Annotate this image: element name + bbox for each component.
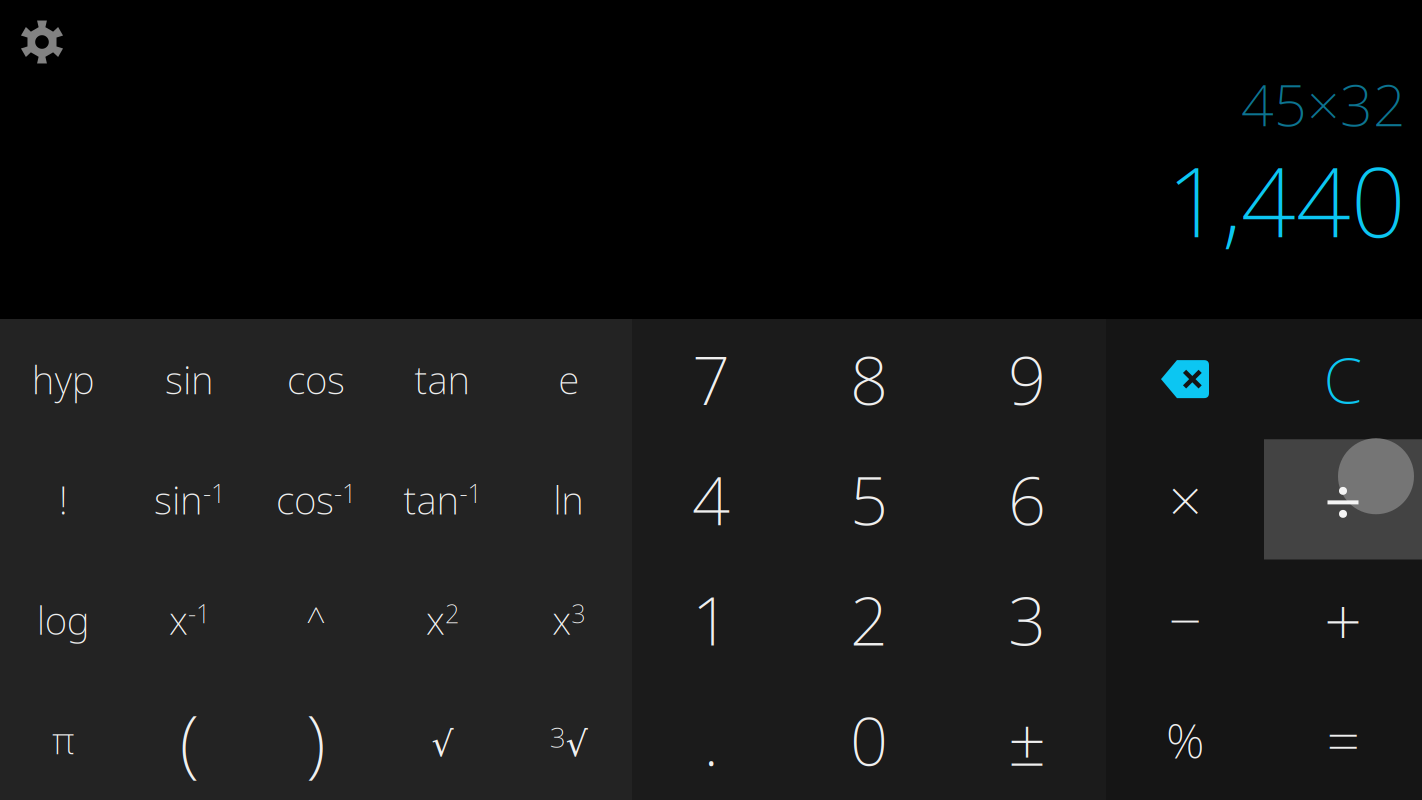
button[interactable]: ( bbox=[126, 680, 253, 800]
staticText: x bbox=[552, 594, 571, 645]
button[interactable]: Settings bbox=[0, 0, 84, 84]
staticText: x bbox=[426, 594, 445, 645]
staticText: log bbox=[37, 594, 90, 645]
staticText: tan bbox=[414, 353, 470, 405]
staticText: tan bbox=[403, 474, 459, 525]
button[interactable]: + bbox=[1264, 559, 1422, 680]
staticText: e bbox=[558, 353, 579, 405]
button[interactable]: x bbox=[126, 559, 253, 680]
button[interactable]: sin bbox=[126, 439, 253, 559]
button[interactable]: cos bbox=[253, 319, 379, 439]
staticText: 6 bbox=[1008, 455, 1046, 544]
staticText: 3 bbox=[571, 597, 585, 630]
staticText: √ bbox=[431, 724, 453, 763]
staticText: -1 bbox=[459, 476, 481, 510]
button[interactable]: 3 bbox=[948, 559, 1106, 680]
button[interactable]: Divide bbox=[1264, 439, 1422, 559]
staticText: 5 bbox=[850, 455, 888, 544]
button[interactable]: 4 bbox=[632, 439, 790, 559]
staticText: ) bbox=[306, 690, 326, 789]
staticText: hyp bbox=[32, 353, 95, 405]
staticText: 2 bbox=[850, 575, 888, 664]
staticText: -1 bbox=[188, 597, 210, 630]
staticText: 45×32 bbox=[1241, 66, 1406, 142]
button[interactable]: ln bbox=[506, 439, 632, 559]
button[interactable]: 0 bbox=[790, 680, 948, 800]
button[interactable]: 9 bbox=[948, 319, 1106, 439]
staticText: x bbox=[169, 594, 188, 645]
staticText: ln bbox=[553, 474, 584, 525]
button[interactable]: tan bbox=[379, 439, 506, 559]
staticText: ( bbox=[180, 690, 200, 789]
staticText: cos bbox=[276, 474, 334, 525]
staticText: 9 bbox=[1008, 335, 1046, 423]
button[interactable]: e bbox=[506, 319, 632, 439]
staticText: = bbox=[1326, 701, 1359, 779]
button[interactable]: sin bbox=[126, 319, 253, 439]
button[interactable]: ) bbox=[253, 680, 379, 800]
staticText: 0 bbox=[850, 696, 888, 784]
staticText: 2 bbox=[445, 597, 459, 630]
staticText: . bbox=[703, 696, 718, 784]
button[interactable]: ± bbox=[948, 680, 1106, 800]
staticText: ± bbox=[1008, 696, 1046, 784]
staticText: sin bbox=[165, 353, 214, 405]
button[interactable]: − bbox=[1106, 559, 1264, 680]
staticText: -1 bbox=[334, 476, 356, 510]
button[interactable]: hyp bbox=[0, 319, 126, 439]
button[interactable]: = bbox=[1264, 680, 1422, 800]
staticText: 1,440 bbox=[1167, 136, 1406, 264]
button[interactable]: 2 bbox=[790, 559, 948, 680]
button[interactable]: ! bbox=[0, 439, 126, 559]
button[interactable]: x bbox=[506, 559, 632, 680]
staticText: 3 bbox=[1008, 575, 1046, 664]
button[interactable]: ^ bbox=[253, 559, 379, 680]
staticText: ! bbox=[59, 474, 68, 525]
staticText: -1 bbox=[203, 476, 225, 510]
button[interactable]: × bbox=[1106, 439, 1264, 559]
staticText: π bbox=[52, 715, 74, 765]
button[interactable]: tan bbox=[379, 319, 506, 439]
staticText: % bbox=[1166, 708, 1204, 772]
staticText: 4 bbox=[692, 455, 730, 544]
staticText: 1 bbox=[692, 575, 730, 664]
button[interactable]: π bbox=[0, 680, 126, 800]
staticText: 8 bbox=[850, 335, 888, 423]
staticText: ^ bbox=[306, 597, 326, 643]
staticText: C bbox=[1323, 337, 1362, 421]
button[interactable]: 8 bbox=[790, 319, 948, 439]
staticText: cos bbox=[287, 353, 345, 405]
button[interactable]: cos bbox=[253, 439, 379, 559]
button[interactable]: log bbox=[0, 559, 126, 680]
staticText: − bbox=[1168, 581, 1201, 659]
button[interactable]: C bbox=[1264, 319, 1422, 439]
button[interactable]: 6 bbox=[948, 439, 1106, 559]
button[interactable]: x bbox=[379, 559, 506, 680]
staticText: sin bbox=[154, 474, 203, 525]
button[interactable]: 7 bbox=[632, 319, 790, 439]
button[interactable]: . bbox=[632, 680, 790, 800]
button[interactable]: Delete bbox=[1106, 319, 1264, 439]
button[interactable]: % bbox=[1106, 680, 1264, 800]
button[interactable]: 5 bbox=[790, 439, 948, 559]
button[interactable]: 3 bbox=[506, 680, 632, 800]
button[interactable]: 1 bbox=[632, 559, 790, 680]
staticText: + bbox=[1324, 575, 1362, 664]
button[interactable]: √ bbox=[379, 684, 506, 800]
staticText: √ bbox=[566, 724, 588, 763]
staticText: 7 bbox=[692, 335, 730, 423]
staticText: × bbox=[1168, 460, 1201, 538]
staticText: 3 bbox=[550, 718, 566, 755]
